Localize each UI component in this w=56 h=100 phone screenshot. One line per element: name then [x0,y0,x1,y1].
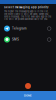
button[interactable]: Telegram [0,23,56,34]
staticText: The higher the messaging app is in the l… [4,10,51,20]
button[interactable]: SMS [0,34,56,45]
staticText: DONE [24,94,32,97]
button[interactable]: Open app [25,83,31,89]
staticText: Telegram [12,27,27,30]
staticText: SMS [12,38,19,41]
button[interactable]: DONE [0,91,56,100]
staticText: Select messaging app priority [4,6,49,9]
